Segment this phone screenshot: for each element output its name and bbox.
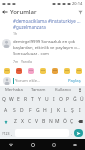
staticText: Ş (71, 107, 74, 114)
button[interactable]: M (54, 116, 61, 127)
button[interactable]: Z (11, 116, 19, 127)
button[interactable]: I (76, 105, 83, 116)
button[interactable]: Paylaş (67, 78, 82, 84)
button[interactable]: Ana ekran (22, 139, 43, 150)
button[interactable]: N (47, 116, 54, 127)
staticText: #guzelmanzara (13, 24, 46, 30)
staticText: F (29, 107, 32, 114)
staticText: I (79, 107, 81, 114)
staticText: Q (2, 96, 6, 103)
button[interactable]: L (62, 105, 69, 116)
button[interactable]: A (2, 105, 10, 116)
staticText: B (42, 118, 46, 125)
button[interactable]: U (43, 94, 50, 105)
staticText: S (13, 107, 16, 114)
button[interactable]: Emoji (39, 67, 46, 74)
button[interactable]: Emoji (15, 67, 22, 74)
button[interactable]: W (8, 94, 15, 105)
staticText: başlardan, etkinlik ve paylaşım ofisi (13, 45, 82, 51)
staticText: G (36, 107, 40, 114)
button[interactable]: Geri (0, 139, 22, 150)
staticText: J (51, 107, 53, 114)
staticText: T (31, 96, 34, 103)
staticText: Paylaş (68, 78, 81, 84)
button[interactable]: G (34, 105, 41, 116)
button[interactable]: Tamam (26, 86, 51, 94)
button[interactable]: Emoji (51, 67, 58, 74)
button[interactable]: Gönder (74, 129, 83, 137)
button[interactable]: E (15, 94, 22, 105)
staticText: 20:14 (72, 1, 83, 6)
button[interactable]: Q (0, 94, 8, 105)
button[interactable]: Shift (0, 116, 11, 127)
staticText: . (71, 131, 73, 136)
button[interactable]: Kullanıcı (51, 86, 76, 94)
staticText: V (35, 118, 39, 125)
staticText: #demoaciklama #instaturkiye #takipcikaza… (13, 18, 81, 24)
button[interactable]: Ğ (71, 94, 78, 105)
staticText: E (17, 96, 20, 103)
staticText: Ö (63, 118, 67, 125)
button[interactable]: C (26, 116, 33, 127)
button[interactable]: P (64, 94, 71, 105)
button[interactable]: demirgel9999 Sonsuzluk en çok (0, 37, 85, 64)
button[interactable]: Filtrele (75, 7, 85, 17)
button[interactable]: Nokta (70, 129, 74, 137)
button[interactable]: Son uygulamalar (43, 139, 64, 150)
button[interactable]: B (40, 116, 47, 127)
button[interactable]: Merhaba (2, 86, 26, 94)
button[interactable]: Sil (75, 116, 85, 127)
staticText: W (9, 96, 14, 103)
staticText: Ü (80, 96, 84, 103)
button[interactable]: Y (36, 94, 43, 105)
button[interactable]: Emoji (3, 67, 10, 74)
staticText: H (43, 107, 47, 114)
staticText: Yorumlar (10, 8, 37, 16)
button[interactable]: Klavye (64, 139, 85, 150)
button[interactable]: #demoaciklama #instaturkiye #takipcikaza… (0, 17, 85, 36)
staticText: K (57, 107, 61, 114)
staticText: C (28, 118, 32, 125)
staticText: Y (38, 96, 41, 103)
staticText: , (11, 131, 13, 136)
button[interactable]: Sesle yaz (76, 86, 83, 94)
staticText: Tamam (31, 87, 46, 93)
button[interactable]: D (18, 105, 26, 116)
button[interactable]: Ç (68, 116, 75, 127)
button[interactable]: V (33, 116, 40, 127)
staticText: 1h (13, 31, 18, 36)
button[interactable]: Ş (69, 105, 76, 116)
staticText: R (24, 96, 28, 103)
button[interactable]: Emoji (27, 67, 34, 74)
button[interactable]: Ö (61, 116, 68, 127)
staticText: Z (14, 118, 17, 125)
button[interactable]: J (48, 105, 55, 116)
button[interactable]: H (41, 105, 48, 116)
button[interactable]: X (19, 116, 26, 127)
button[interactable]: I (50, 94, 57, 105)
staticText: N (49, 118, 53, 125)
staticText: X (21, 118, 24, 125)
button[interactable]: F (26, 105, 34, 116)
staticText: L (64, 107, 67, 114)
staticText: Yorum ekle... (15, 78, 67, 84)
button[interactable]: R (22, 94, 29, 105)
button[interactable]: K (55, 105, 62, 116)
staticText: demirgel9999 Sonsuzluk en çok (13, 39, 76, 45)
button[interactable]: S (10, 105, 18, 116)
button[interactable]: Ü (78, 94, 85, 105)
button[interactable]: Geri (0, 7, 10, 17)
staticText: P (66, 96, 70, 103)
button[interactable]: Virgül (10, 129, 14, 137)
button[interactable]: Emoji (63, 67, 70, 74)
staticText: M (55, 118, 60, 125)
staticText: Merhaba (5, 87, 23, 93)
staticText: Sonsuzluuzz . com (13, 51, 49, 57)
button[interactable]: T (29, 94, 36, 105)
button[interactable]: O (57, 94, 64, 105)
button[interactable]: ?123 (2, 129, 10, 137)
staticText: Ğ (73, 96, 77, 103)
staticText: 7m Yanıtla (13, 59, 32, 64)
button[interactable]: Emoji (75, 67, 82, 74)
